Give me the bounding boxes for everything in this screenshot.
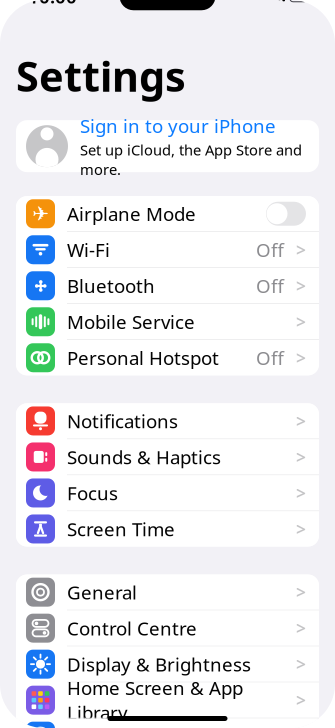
button[interactable]: Notifications: [16, 403, 319, 438]
button[interactable]: Wi-Fi: [16, 232, 319, 267]
button[interactable]: Mobile Service: [16, 304, 319, 339]
staticText: 10:00: [28, 0, 77, 9]
staticText: Personal Hotspot: [67, 345, 219, 370]
staticText: General: [67, 580, 137, 604]
button[interactable]: Control Centre: [16, 610, 319, 646]
staticText: 🕂: [34, 276, 46, 295]
staticText: Screen Time: [67, 516, 175, 541]
staticText: Airplane Mode: [67, 201, 196, 226]
button[interactable]: Home Screen & App Library: [16, 682, 319, 718]
staticText: Mobile Service: [67, 309, 195, 334]
staticText: Notifications: [67, 408, 178, 433]
staticText: >: [296, 445, 306, 468]
button[interactable]: Display & Brightness: [16, 646, 319, 682]
staticText: Sign in to your iPhone: [80, 113, 276, 138]
staticText: Sounds & Haptics: [67, 444, 221, 469]
staticText: >: [296, 617, 306, 640]
staticText: Settings: [16, 48, 186, 103]
button[interactable]: 🕂: [16, 268, 319, 303]
staticText: Set up iCloud, the App Store and more.: [80, 140, 302, 179]
button[interactable]: Screen Time: [16, 511, 319, 546]
button[interactable]: ✈: [16, 196, 319, 231]
staticText: >: [296, 310, 306, 333]
staticText: Focus: [67, 480, 118, 505]
staticText: >: [296, 481, 306, 504]
staticText: Display & Brightness: [67, 652, 251, 676]
button[interactable]: Personal Hotspot: [16, 340, 319, 375]
staticText: >: [296, 653, 306, 676]
button[interactable]: General: [16, 574, 319, 610]
button[interactable]: Focus: [16, 475, 319, 510]
staticText: ✈: [32, 202, 49, 225]
staticText: Off: [256, 273, 284, 298]
staticText: >: [296, 517, 306, 540]
staticText: >: [296, 581, 306, 604]
button[interactable]: Accessibility: [16, 718, 319, 728]
staticText: Home Screen & App Library: [67, 675, 243, 725]
staticText: Control Centre: [67, 616, 197, 640]
button[interactable]: Sign in to your iPhone: [0, 120, 335, 172]
staticText: Off: [256, 345, 284, 370]
staticText: >: [296, 346, 306, 369]
staticText: >: [296, 238, 306, 261]
staticText: >: [296, 689, 306, 712]
staticText: Off: [256, 237, 284, 262]
staticText: >: [296, 725, 306, 728]
staticText: Bluetooth: [67, 273, 155, 298]
staticText: >: [296, 409, 306, 432]
staticText: >: [296, 274, 306, 297]
button[interactable]: Sounds & Haptics: [16, 439, 319, 474]
staticText: Wi-Fi: [67, 237, 110, 262]
